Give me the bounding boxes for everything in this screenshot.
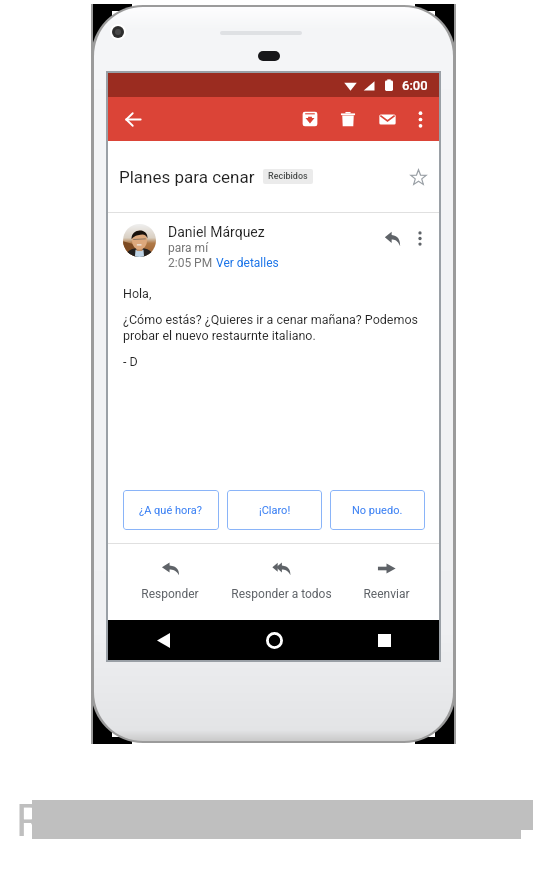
button[interactable]: Back (108, 620, 219, 660)
staticText: ¡Claro! (259, 504, 291, 517)
staticText: No puedo. (352, 504, 403, 517)
button[interactable]: More options (407, 224, 433, 252)
button[interactable]: Delete (330, 97, 366, 141)
staticText: Reenviar (363, 587, 410, 601)
button[interactable]: Responder (110, 544, 230, 620)
staticText: Daniel Márquez (168, 224, 265, 240)
button[interactable]: Archive (292, 97, 328, 141)
staticText: 2:05 PM (168, 256, 216, 270)
staticText: Planes para cenar (119, 167, 255, 187)
button[interactable]: Responder a todos (221, 544, 341, 620)
button[interactable]: Mark unread (369, 97, 405, 141)
staticText: Hola, (123, 286, 152, 301)
staticText: - D (123, 354, 138, 369)
staticText: ¿Cómo estás? ¿Quieres ir a cenar mañana?… (123, 312, 430, 343)
button[interactable]: Star (400, 159, 436, 195)
button[interactable]: Home (219, 620, 329, 660)
button[interactable]: Recents (329, 620, 439, 660)
staticText: Recibidos (268, 171, 308, 182)
button[interactable]: More options (405, 97, 435, 141)
staticText: Responder (141, 587, 199, 601)
button[interactable]: Back (114, 97, 152, 141)
button[interactable]: Reenviar (326, 544, 446, 620)
button[interactable]: ¿A qué hora? (123, 490, 219, 530)
staticText: R (16, 795, 44, 847)
staticText: para mí (168, 241, 209, 255)
staticText: ¿A qué hora? (139, 504, 203, 517)
button[interactable]: ¡Claro! (227, 490, 322, 530)
button[interactable]: No puedo. (330, 490, 425, 530)
staticText: Ver detalles (216, 256, 279, 270)
staticText: 6:00 (402, 78, 428, 93)
staticText: Responder a todos (231, 587, 332, 601)
button[interactable]: Reply (377, 224, 407, 252)
